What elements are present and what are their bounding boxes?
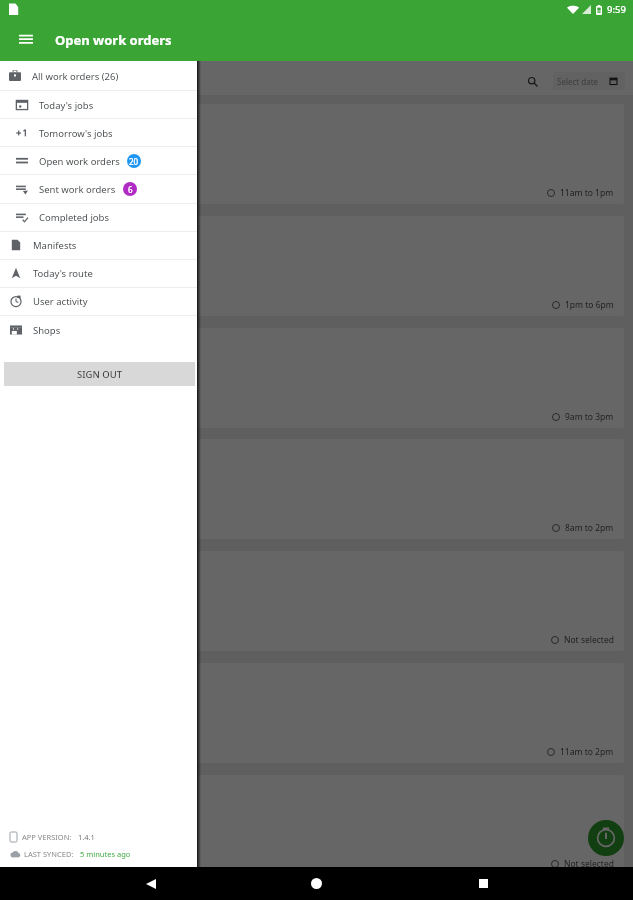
button[interactable]: 9am to 3pm (9, 328, 624, 428)
staticText: Tomorrow's jobs (39, 127, 113, 140)
staticText: User activity (33, 295, 88, 308)
staticText: Select date (557, 76, 599, 87)
staticText: 9:59 (607, 3, 626, 16)
staticText: 5 minutes ago (80, 849, 131, 859)
button[interactable]: Select date (553, 72, 625, 90)
staticText: Not selected (564, 634, 614, 646)
staticText: Not selected (564, 858, 614, 870)
button[interactable]: Back (134, 867, 167, 900)
staticText: 20 (129, 156, 139, 167)
button[interactable]: SIGN OUT (4, 362, 195, 386)
button[interactable]: All work orders (26) (0, 62, 197, 90)
button[interactable]: Not selected (9, 775, 624, 875)
button[interactable]: Completed jobs (0, 203, 197, 231)
button[interactable]: Start timer (588, 820, 624, 856)
staticText: APP VERSION: (22, 832, 72, 842)
button[interactable]: Open navigation drawer (10, 24, 41, 55)
staticText: Open work orders (39, 155, 120, 168)
button[interactable]: Search (522, 71, 544, 93)
button[interactable]: Recents (467, 867, 500, 900)
staticText: 8am to 2pm (565, 522, 614, 534)
staticText: Manifests (33, 239, 77, 252)
button[interactable]: Manifests (0, 231, 197, 259)
staticText: Sent work orders (39, 183, 116, 196)
button[interactable]: Open work orders (0, 147, 197, 175)
button[interactable]: 8am to 2pm (9, 439, 624, 539)
button[interactable]: 1pm to 6pm (9, 216, 624, 316)
staticText: Shops (33, 324, 61, 337)
button[interactable]: Home (300, 867, 333, 900)
button[interactable]: Today's route (0, 259, 197, 287)
staticText: Completed jobs (39, 211, 109, 224)
staticText: 1.4.1 (78, 832, 95, 842)
staticText: 6 (128, 184, 133, 195)
button[interactable]: Shops (0, 316, 197, 344)
staticText: 11am to 1pm (560, 187, 614, 199)
button[interactable]: User activity (0, 287, 197, 315)
staticText: SIGN OUT (77, 368, 123, 381)
staticText: All work orders (26) (32, 70, 119, 83)
button[interactable]: Today's jobs (0, 91, 197, 119)
staticText: 1pm to 6pm (565, 299, 614, 311)
button[interactable]: 11am to 2pm (9, 663, 624, 763)
staticText: Today's jobs (39, 99, 94, 112)
button[interactable]: Not selected (9, 551, 624, 651)
staticText: Today's route (33, 267, 93, 280)
staticText: 9am to 3pm (565, 411, 614, 423)
staticText: 11am to 2pm (560, 746, 614, 758)
button[interactable]: 11am to 1pm (9, 104, 624, 204)
staticText: LAST SYNCED: (24, 849, 74, 859)
button[interactable]: Sent work orders (0, 175, 197, 203)
staticText: Open work orders (55, 31, 172, 49)
button[interactable]: Tomorrow's jobs (0, 119, 197, 147)
